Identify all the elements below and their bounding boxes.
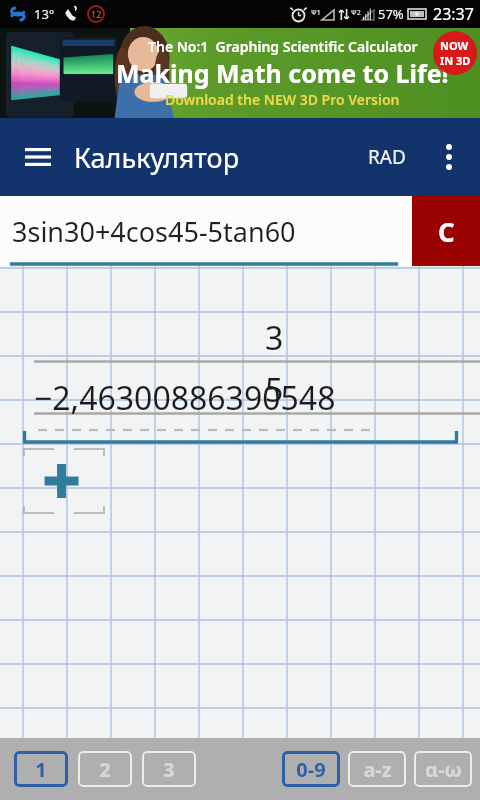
button[interactable]: 0-9 [282, 751, 340, 787]
button[interactable]: More options [426, 134, 472, 180]
staticText: a-z [363, 756, 392, 783]
button[interactable]: 3sin30+4cos45-5tan60 [0, 196, 412, 266]
staticText: RAD [368, 144, 406, 170]
staticText: 13° [34, 5, 55, 23]
staticText: C [438, 214, 455, 249]
button[interactable]: 2 [78, 751, 132, 787]
button[interactable]: Open navigation menu [14, 133, 62, 181]
staticText: Ψ2 [351, 8, 361, 18]
staticText: IN 3D [440, 53, 471, 68]
staticText: Download the NEW 3D Pro Version [165, 90, 400, 109]
button[interactable]: C [412, 196, 480, 266]
staticText: NOW [440, 38, 469, 53]
staticText: 57% [378, 5, 404, 23]
staticText: 3 [163, 756, 175, 783]
button[interactable]: Add new expression [23, 448, 105, 514]
staticText: 3 [265, 316, 284, 360]
button[interactable]: Advertisement [0, 28, 480, 118]
button[interactable]: 1 [14, 751, 68, 787]
staticText: 1 [35, 756, 47, 783]
button[interactable]: 3 [142, 751, 196, 787]
staticText: The No:1 Graphing Scientific Calculator [148, 37, 418, 56]
staticText: 12 [91, 8, 102, 20]
button[interactable]: a-z [348, 751, 406, 787]
staticText: 5 [265, 368, 284, 412]
staticText: Ψ1 [311, 8, 321, 18]
staticText: −2,46300886390548 [34, 376, 336, 420]
staticText: 23:37 [433, 3, 474, 25]
button[interactable]: α-ω [414, 751, 472, 787]
staticText: 0-9 [296, 756, 326, 783]
staticText: 2 [99, 756, 111, 783]
staticText: Making Math come to Life! [116, 56, 449, 90]
staticText: 3sin30+4cos45-5tan60 [12, 213, 296, 250]
staticText: α-ω [425, 756, 462, 783]
button[interactable]: RAD [358, 132, 416, 182]
staticText: Калькулятор [74, 139, 240, 176]
